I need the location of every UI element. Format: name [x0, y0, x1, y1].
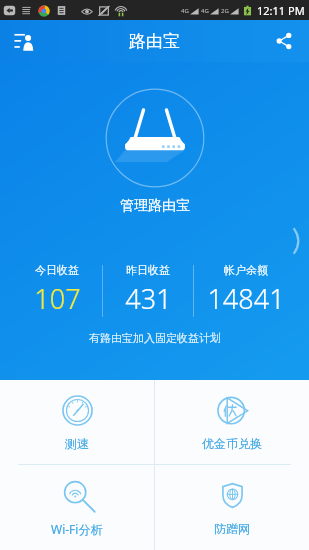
- button[interactable]: 优金币兑换: [155, 380, 309, 464]
- button[interactable]: Wi-Fi分析: [0, 465, 154, 550]
- button[interactable]: 防蹭网: [155, 465, 309, 550]
- staticText: 优金币兑换: [202, 436, 262, 451]
- button[interactable]: 今日收益: [12, 263, 102, 317]
- staticText: 管理路由宝: [120, 197, 190, 215]
- staticText: 4G: [201, 7, 209, 15]
- staticText: 4G: [181, 7, 189, 15]
- staticText: 2G: [221, 7, 229, 15]
- button[interactable]: 昨日收益: [103, 263, 193, 317]
- staticText: 测速: [65, 436, 89, 451]
- button[interactable]: Account: [7, 24, 41, 58]
- staticText: 431: [125, 280, 172, 317]
- staticText: 12:11 PM: [257, 3, 305, 18]
- staticText: 防蹭网: [214, 521, 250, 536]
- staticText: 107: [34, 280, 81, 317]
- staticText: 帐户余额: [224, 263, 268, 277]
- staticText: 14841: [207, 280, 285, 317]
- button[interactable]: 帐户余额: [194, 263, 297, 317]
- button[interactable]: 管理路由宝: [105, 88, 205, 188]
- staticText: Wi-Fi分析: [51, 521, 103, 537]
- staticText: 有路由宝加入固定收益计划: [89, 331, 221, 345]
- button[interactable]: 测速: [0, 380, 154, 464]
- staticText: 昨日收益: [126, 263, 170, 277]
- button[interactable]: Share: [267, 24, 301, 58]
- staticText: 今日收益: [35, 263, 79, 277]
- staticText: 路由宝: [129, 31, 180, 52]
